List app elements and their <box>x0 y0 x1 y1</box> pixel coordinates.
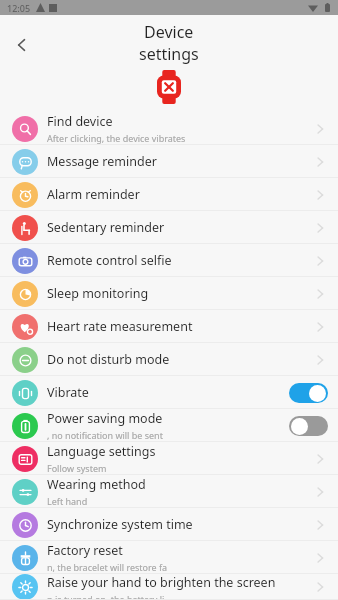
staticText: n, the bracelet will restore fa <box>47 561 168 573</box>
staticText: After clicking, the device vibrates <box>47 132 186 144</box>
staticText: Language settings <box>47 443 156 460</box>
staticText: , no notification will be sent <box>47 429 163 441</box>
staticText: Synchronize system time <box>47 516 193 533</box>
button[interactable]: Do not disturb mode <box>0 343 338 376</box>
button[interactable]: Factory reset <box>0 541 338 574</box>
staticText: n is turned on, the battery li <box>47 593 165 600</box>
staticText: Do not disturb mode <box>47 351 170 368</box>
button[interactable]: Message reminder <box>0 145 338 178</box>
staticText: 12:05 <box>7 2 31 14</box>
button[interactable]: Wearing method <box>0 475 338 508</box>
staticText: Remote control selfie <box>47 252 172 269</box>
button[interactable]: Power saving mode <box>0 409 338 442</box>
button[interactable]: Sedentary reminder <box>0 211 338 244</box>
button[interactable]: Toggle off <box>289 416 328 436</box>
staticText: Vibrate <box>47 384 89 401</box>
staticText: Device <box>144 21 194 43</box>
staticText: Left hand <box>47 495 88 507</box>
button[interactable]: Alarm reminder <box>0 178 338 211</box>
staticText: Message reminder <box>47 153 157 170</box>
button[interactable]: Back <box>6 29 38 61</box>
button[interactable]: Remote control selfie <box>0 244 338 277</box>
staticText: Sedentary reminder <box>47 219 165 236</box>
staticText: Factory reset <box>47 542 123 559</box>
button[interactable]: Vibrate <box>0 376 338 409</box>
staticText: Heart rate measurement <box>47 318 193 335</box>
staticText: Wearing method <box>47 476 146 493</box>
button[interactable]: Synchronize system time <box>0 508 338 541</box>
staticText: settings <box>139 43 199 65</box>
button[interactable]: Raise your hand to brighten the screen <box>0 574 338 600</box>
button[interactable]: Sleep monitoring <box>0 277 338 310</box>
staticText: Sleep monitoring <box>47 285 149 302</box>
button[interactable]: Find device <box>0 112 338 145</box>
button[interactable]: Language settings <box>0 442 338 475</box>
button[interactable]: Heart rate measurement <box>0 310 338 343</box>
staticText: Alarm reminder <box>47 186 140 203</box>
staticText: Raise your hand to brighten the screen <box>47 574 276 591</box>
staticText: Follow system <box>47 462 107 474</box>
button[interactable]: Toggle on <box>289 383 328 403</box>
staticText: Power saving mode <box>47 410 163 427</box>
staticText: Find device <box>47 113 113 130</box>
